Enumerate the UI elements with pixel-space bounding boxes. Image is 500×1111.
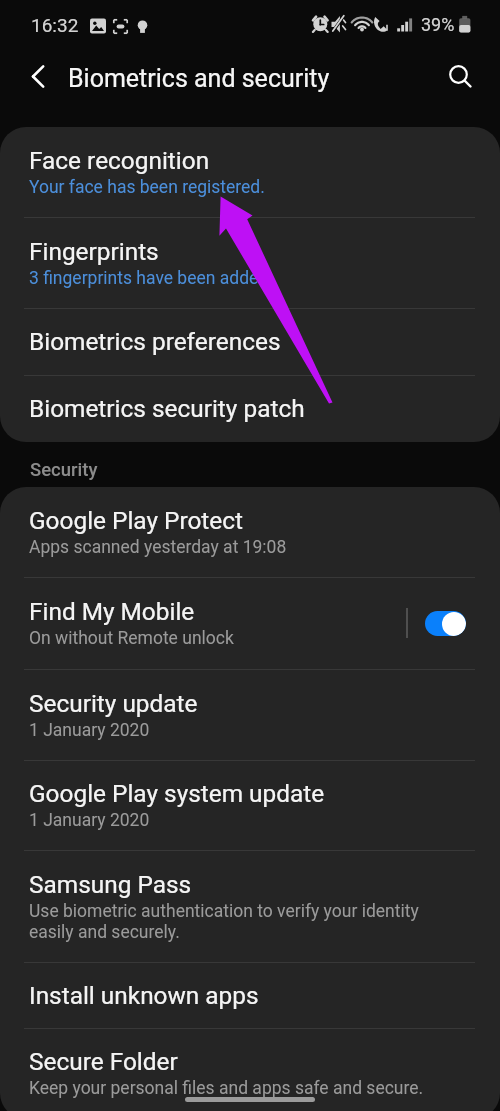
button[interactable]: Fingerprints [0,218,500,309]
staticText: 1 January 2020 [29,720,150,741]
staticText: Install unknown apps [29,981,259,1010]
button[interactable]: Google Play Protect [0,487,500,578]
button[interactable]: Face recognition [0,127,500,218]
button[interactable]: Google Play system update [0,761,500,851]
button[interactable]: Navigate up [14,52,59,97]
staticText: Apps scanned yesterday at 19:08 [29,537,287,558]
staticText: Fingerprints [29,237,159,266]
staticText: Keep your personal files and apps safe a… [29,1078,424,1099]
button[interactable]: Find My Mobile [0,578,500,670]
button[interactable]: Security update [0,670,500,761]
staticText: 3 fingerprints have been added [29,268,269,289]
button[interactable]: Search [436,52,481,97]
staticText: easily and securely. [29,922,180,943]
button[interactable]: Biometrics preferences [0,309,500,376]
staticText: Biometrics and security [68,64,330,93]
staticText: Your face has been registered. [29,177,265,198]
staticText: Biometrics security patch [29,394,305,423]
staticText: Samsung Pass [29,870,192,899]
staticText: Google Play system update [29,779,325,808]
button[interactable]: Find My Mobile switch, on [425,611,466,636]
staticText: Security update [29,689,198,718]
button[interactable]: Biometrics security patch [0,376,500,442]
button[interactable]: Samsung Pass [0,851,500,963]
staticText: 16:32 [31,14,79,36]
staticText: Secure Folder [29,1047,178,1076]
button[interactable]: Install unknown apps [0,963,500,1029]
staticText: On without Remote unlock [29,628,234,649]
button[interactable]: Secure Folder [0,1029,500,1111]
staticText: Biometrics preferences [29,327,281,356]
staticText: 39% [421,14,455,35]
staticText: Face recognition [29,146,210,175]
staticText: Security [30,459,98,481]
staticText: Google Play Protect [29,506,244,535]
staticText: Find My Mobile [29,597,195,626]
staticText: Use biometric authentication to verify y… [29,901,419,922]
staticText: 1 January 2020 [29,810,150,831]
